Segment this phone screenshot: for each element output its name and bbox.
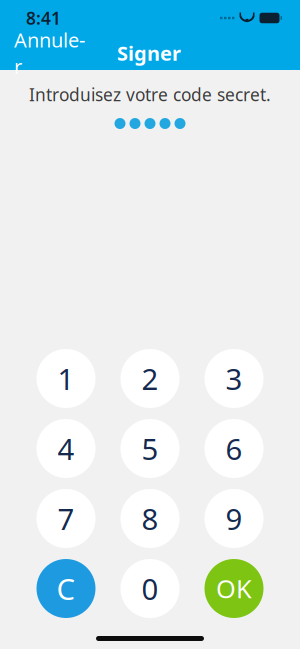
button[interactable]: 0 bbox=[120, 559, 179, 618]
staticText: 4 bbox=[57, 429, 74, 468]
staticText: OK bbox=[216, 572, 252, 605]
staticText: 3 bbox=[225, 359, 242, 398]
staticText: 8:41 bbox=[26, 6, 61, 29]
staticText: 5 bbox=[141, 429, 158, 468]
staticText: Signer bbox=[117, 40, 181, 66]
staticText: 6 bbox=[225, 429, 242, 468]
staticText: 8 bbox=[141, 499, 158, 538]
button[interactable]: 8 bbox=[120, 489, 179, 548]
staticText: 2 bbox=[141, 359, 158, 398]
staticText: Introduisez votre code secret. bbox=[29, 83, 271, 106]
staticText: 0 bbox=[141, 569, 158, 608]
button[interactable]: 5 bbox=[120, 419, 179, 478]
button[interactable]: 9 bbox=[204, 489, 263, 548]
button[interactable]: C bbox=[36, 559, 95, 618]
staticText: Annuler bbox=[14, 26, 85, 79]
button[interactable]: 7 bbox=[36, 489, 95, 548]
button[interactable]: Signer bbox=[105, 34, 193, 72]
button[interactable]: 6 bbox=[204, 419, 263, 478]
button[interactable]: 3 bbox=[204, 349, 263, 408]
button[interactable]: Annuler bbox=[2, 20, 97, 85]
button[interactable]: 2 bbox=[120, 349, 179, 408]
button[interactable]: OK bbox=[204, 559, 263, 618]
button[interactable]: 4 bbox=[36, 419, 95, 478]
staticText: 7 bbox=[57, 499, 74, 538]
staticText: C bbox=[56, 569, 75, 608]
staticText: 9 bbox=[225, 499, 242, 538]
staticText: 1 bbox=[57, 359, 74, 398]
button[interactable]: 1 bbox=[36, 349, 95, 408]
